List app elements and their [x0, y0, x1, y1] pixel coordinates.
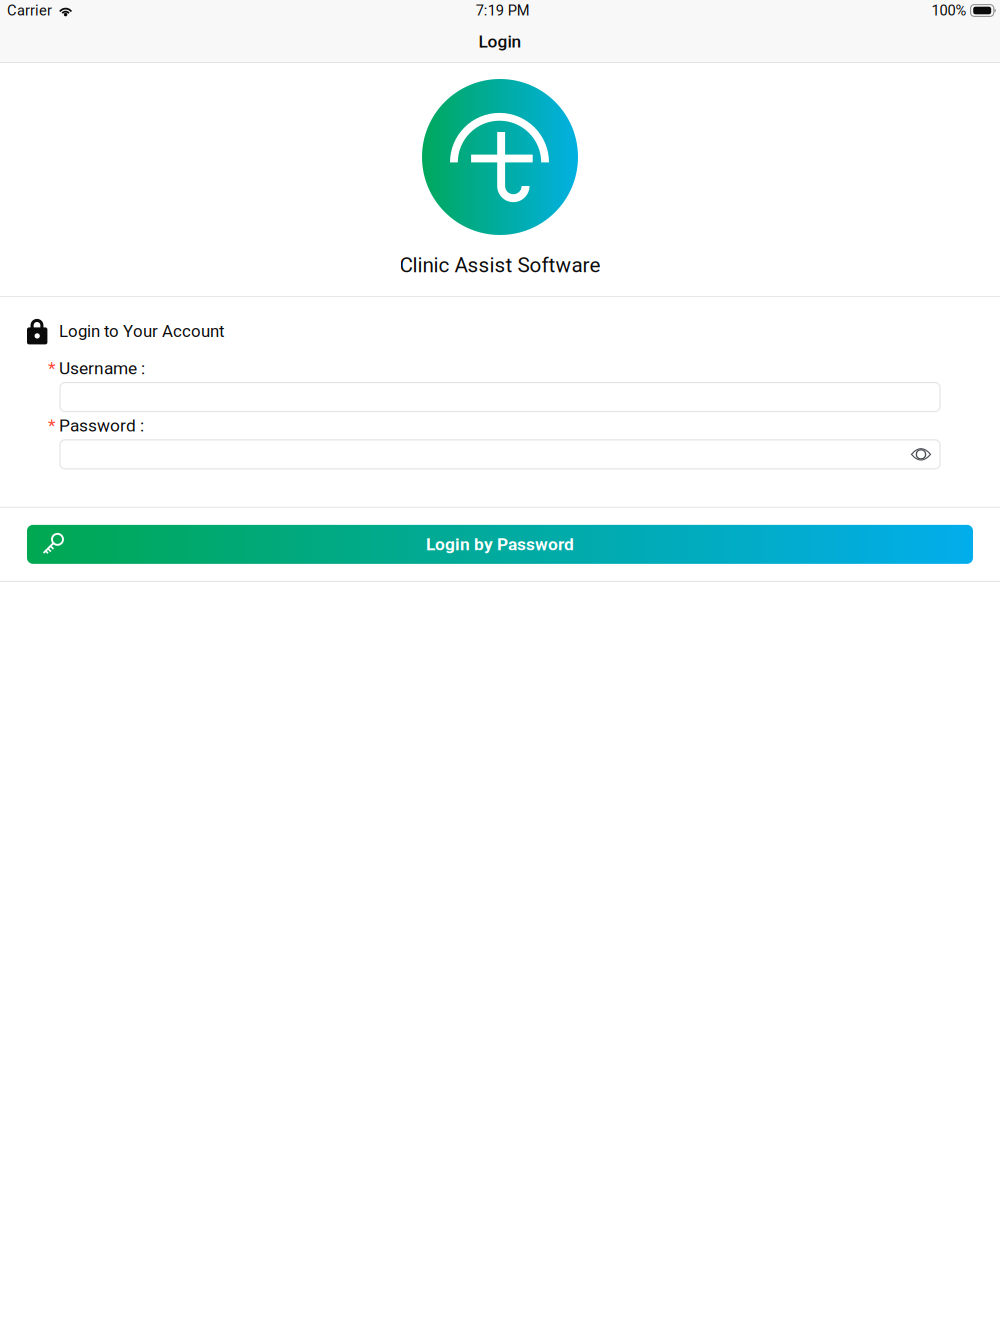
staticText: * [48, 415, 55, 436]
button[interactable]: Login by Password [27, 525, 973, 564]
staticText: Login [478, 31, 521, 52]
staticText: Carrier [7, 2, 52, 19]
staticText: 100% [932, 2, 967, 19]
staticText: Login to Your Account [59, 321, 224, 341]
staticText: Clinic Assist Software [399, 253, 600, 277]
button[interactable]: Show password [906, 439, 936, 469]
staticText: Username : [59, 358, 145, 378]
staticText: Password : [59, 415, 144, 436]
staticText: * [48, 358, 55, 378]
staticText: Login by Password [426, 534, 574, 554]
staticText: 7:19 PM [476, 2, 530, 19]
